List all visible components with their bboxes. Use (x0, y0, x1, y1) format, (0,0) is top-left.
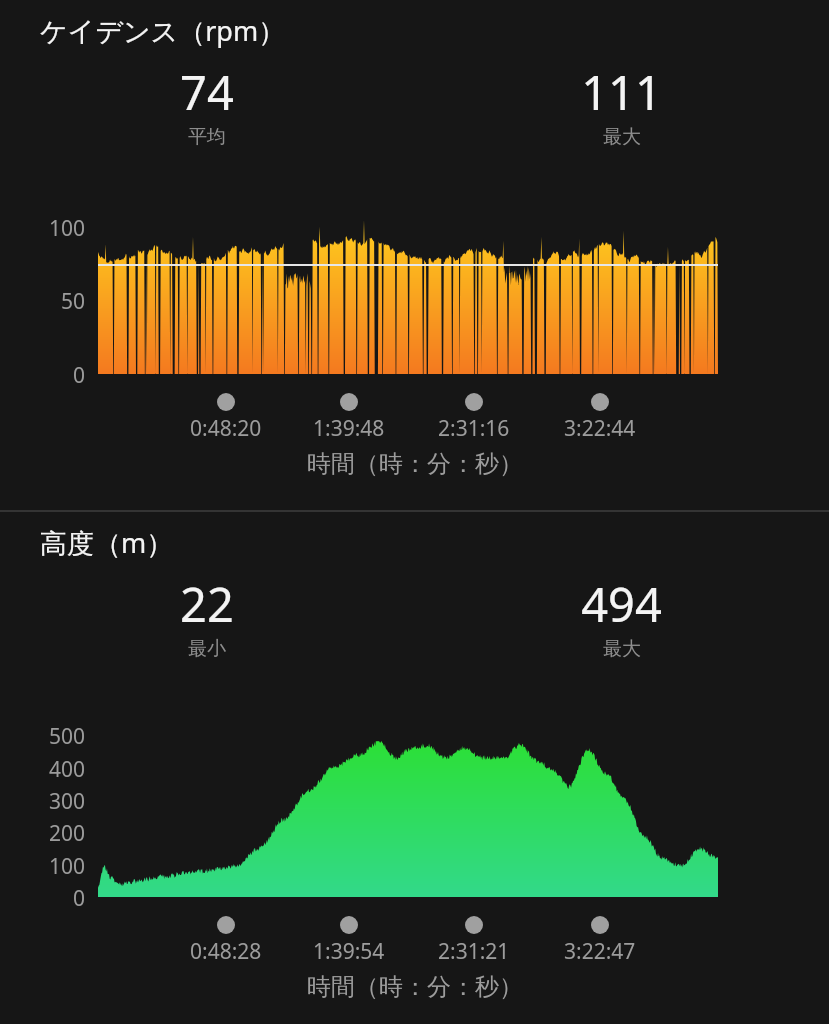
staticText: 最大 (603, 125, 641, 149)
button[interactable]: ケイデンス（rpm） (40, 12, 286, 49)
other: Elevation chart (0, 512, 829, 1024)
staticText: 500 (49, 722, 86, 751)
staticText: 時間（時：分：秒） (307, 972, 523, 1002)
staticText: 0:48:20 (190, 414, 262, 443)
staticText: 3:22:47 (564, 937, 636, 966)
staticText: 494 (581, 572, 662, 636)
staticText: 111 (581, 60, 662, 124)
staticText: 0 (73, 884, 86, 913)
staticText: 22 (180, 572, 234, 636)
staticText: 400 (49, 755, 86, 784)
staticText: 300 (49, 787, 86, 816)
other: Cadence chart (0, 0, 829, 510)
button[interactable]: 高度（m） (40, 524, 174, 561)
button[interactable]: 74 (180, 60, 234, 149)
staticText: 74 (180, 60, 234, 124)
staticText: 100 (49, 214, 86, 243)
staticText: 200 (49, 819, 86, 848)
staticText: 3:22:44 (564, 414, 636, 443)
staticText: 100 (49, 852, 86, 881)
staticText: 2:31:21 (438, 937, 510, 966)
button[interactable]: 111 (581, 60, 662, 149)
staticText: 最小 (188, 637, 226, 661)
staticText: 平均 (188, 125, 226, 149)
staticText: 最大 (603, 637, 641, 661)
staticText: 0:48:28 (190, 937, 262, 966)
staticText: 50 (61, 287, 86, 316)
staticText: 時間（時：分：秒） (307, 449, 523, 479)
button[interactable]: 22 (180, 572, 234, 661)
staticText: 1:39:48 (313, 414, 385, 443)
staticText: 2:31:16 (438, 414, 510, 443)
staticText: 1:39:54 (313, 937, 385, 966)
button[interactable]: 494 (581, 572, 662, 661)
staticText: 0 (73, 361, 86, 390)
